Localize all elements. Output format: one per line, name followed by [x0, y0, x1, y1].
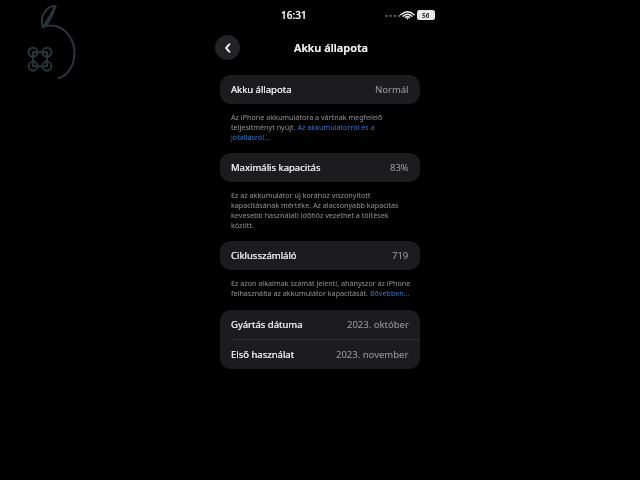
staticText: Ciklusszámláló: [231, 249, 297, 262]
staticText: 83%: [390, 161, 409, 174]
button[interactable]: Akku állapota: [220, 75, 420, 104]
staticText: Az iPhone akkumulátora a vártnak megfele…: [231, 112, 413, 142]
staticText: Ez az akkumulátor új korához viszonyítot…: [231, 190, 407, 230]
staticText: 56: [422, 11, 430, 20]
staticText: 2023. október: [347, 318, 409, 331]
button[interactable]: Ciklusszámláló: [220, 241, 420, 270]
button[interactable]: Maximális kapacitás: [220, 153, 420, 182]
button[interactable]: Első használat: [220, 340, 420, 369]
staticText: Akku állapota: [231, 83, 292, 96]
staticText: Ez azon alkalmak számát jelenti, ahánysz…: [231, 278, 413, 298]
staticText: Normál: [375, 83, 409, 96]
staticText: Gyártás dátuma: [231, 318, 303, 331]
staticText: 719: [392, 249, 409, 262]
staticText: Maximális kapacitás: [231, 161, 321, 174]
button[interactable]: Back: [215, 35, 240, 60]
staticText: 16:31: [281, 8, 307, 22]
staticText: 2023. november: [336, 348, 409, 361]
staticText: Akku állapota: [294, 40, 368, 55]
button[interactable]: Gyártás dátuma: [220, 310, 420, 339]
staticText: Első használat: [231, 348, 295, 361]
